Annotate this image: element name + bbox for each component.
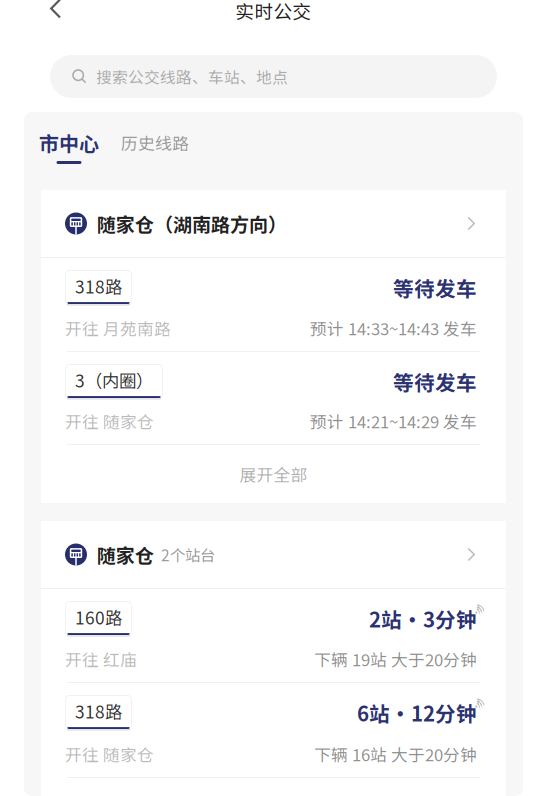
button[interactable]: 随家仓	[41, 521, 506, 588]
staticText: 开往 月苑南路	[65, 316, 171, 340]
staticText: 160路	[75, 604, 122, 630]
staticText: 2站·3分钟	[369, 604, 477, 633]
button[interactable]: 展开全部	[41, 445, 506, 503]
button[interactable]: 市中心	[39, 128, 99, 164]
staticText: 318路	[75, 273, 122, 299]
button[interactable]: 随家仓（湖南路方向）	[41, 190, 506, 257]
staticText: 开往 红庙	[65, 647, 137, 671]
staticText: 预计 14:33~14:43 发车	[310, 316, 477, 340]
staticText: 6站·12分钟	[357, 698, 477, 727]
staticText: 下辆 16站 大于20分钟	[314, 742, 477, 766]
staticText: 等待发车	[393, 273, 477, 302]
staticText: 2个站台	[161, 543, 215, 566]
button[interactable]: 318路	[41, 683, 506, 777]
staticText: 实时公交	[235, 0, 311, 24]
staticText: 3（内圈）	[75, 367, 153, 393]
staticText: 市中心	[39, 128, 99, 157]
staticText: 下辆 19站 大于20分钟	[314, 647, 477, 671]
button[interactable]: 历史线路	[121, 128, 189, 166]
staticText: 开往 随家仓	[65, 742, 154, 766]
staticText: 展开全部	[239, 462, 307, 486]
staticText: 搜索公交线路、车站、地点	[96, 65, 288, 88]
staticText: 历史线路	[121, 130, 189, 154]
button[interactable]: 318路	[41, 258, 506, 351]
staticText: 等待发车	[393, 367, 477, 396]
staticText: 预计 14:21~14:29 发车	[310, 409, 477, 433]
staticText: 318路	[75, 698, 122, 724]
staticText: 随家仓（湖南路方向）	[97, 210, 287, 237]
button[interactable]: 3（内圈）	[41, 352, 506, 444]
button[interactable]: Back	[50, 0, 63, 24]
button[interactable]: 160路	[41, 589, 506, 682]
staticText: 随家仓	[97, 541, 154, 568]
staticText: 开往 随家仓	[65, 409, 154, 433]
